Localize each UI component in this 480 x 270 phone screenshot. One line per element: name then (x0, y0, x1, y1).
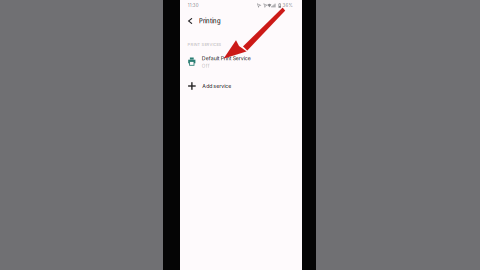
staticText: Add service (202, 83, 231, 89)
button[interactable]: Add service (180, 77, 302, 95)
staticText: PRINT SERVICES (188, 42, 222, 47)
button[interactable]: Default Print Service (180, 53, 302, 71)
staticText: Default Print Service (202, 55, 251, 61)
staticText: 11:30 (188, 3, 199, 8)
staticText: 36% (282, 3, 292, 8)
staticText: Printing (199, 17, 221, 25)
staticText: Off (202, 63, 210, 69)
button[interactable]: Back (189, 14, 199, 28)
